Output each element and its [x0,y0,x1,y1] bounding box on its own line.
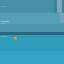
button[interactable] [1,21,9,24]
button[interactable]: More options [57,0,62,13]
button[interactable]: More options [0,0,64,13]
button[interactable]: Add [14,37,17,40]
